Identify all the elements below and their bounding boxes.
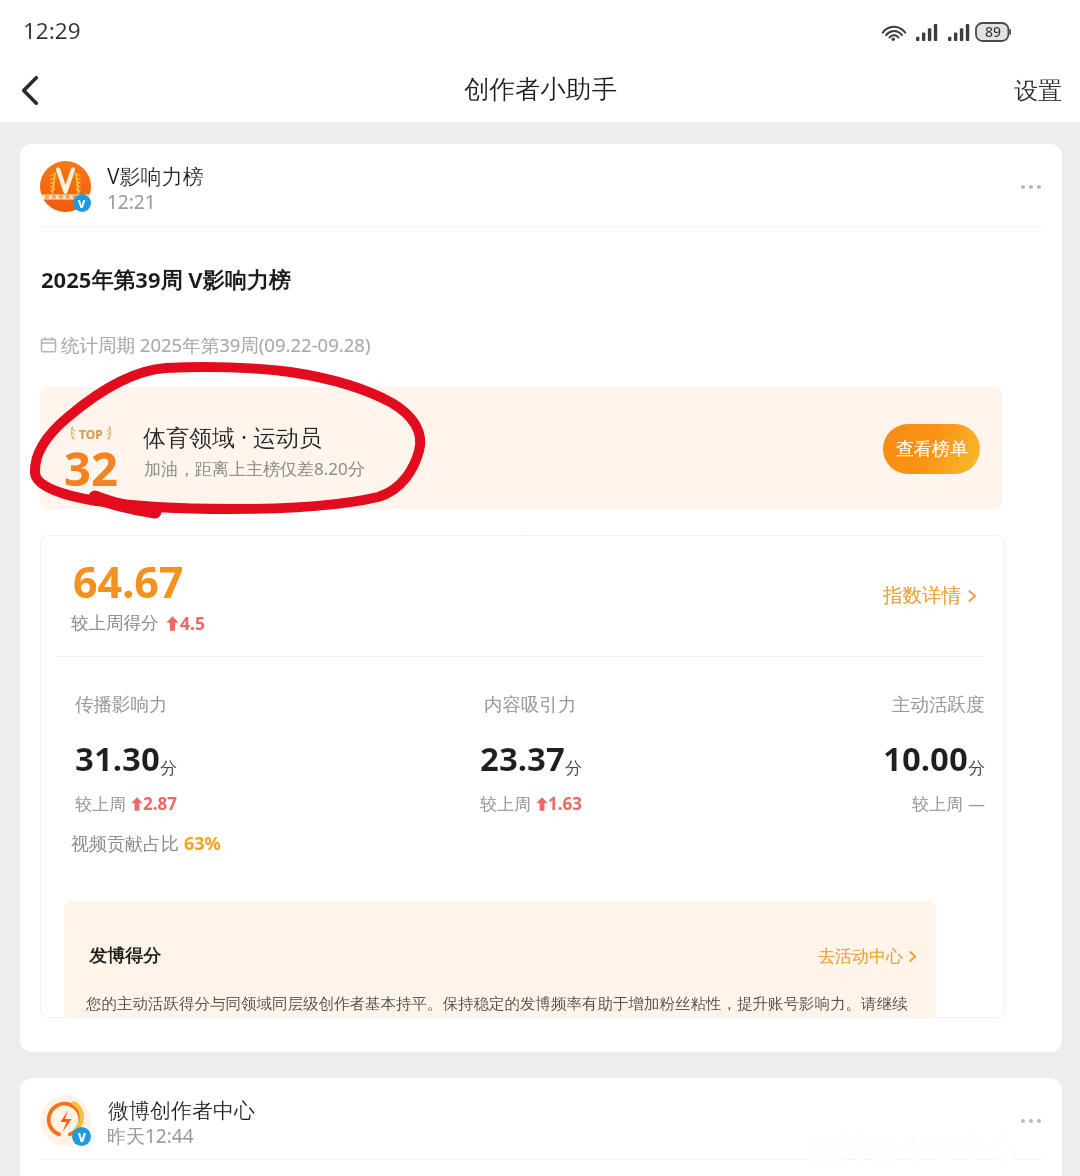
staticText: 指数详情 <box>883 583 961 608</box>
staticText: 23.37 <box>480 736 565 781</box>
button[interactable]: 指数详情 <box>877 579 985 612</box>
button[interactable]: Back <box>0 62 63 118</box>
staticText: 89 <box>985 22 1002 41</box>
staticText: 查看榜单 <box>896 438 968 461</box>
button[interactable]: TOP <box>40 387 1002 509</box>
staticText: 去活动中心 <box>818 946 903 967</box>
staticText: TOP <box>79 426 103 440</box>
button[interactable]: 发博得分 <box>64 901 936 1018</box>
staticText: 64.67 <box>73 552 184 611</box>
staticText: 分 <box>160 758 177 779</box>
staticText: 体育领域 · 运动员 <box>143 421 323 452</box>
button[interactable]: V <box>20 1078 1062 1176</box>
button[interactable]: 查看榜单 <box>883 424 980 474</box>
staticText: V影响力榜 <box>107 162 204 191</box>
staticText: 视频贡献占比 <box>71 831 184 856</box>
button[interactable]: More options <box>1015 1113 1047 1129</box>
staticText: 设置 <box>1014 76 1062 106</box>
staticText: 统计周期 2025年第39周(09.22-09.28) <box>61 332 371 357</box>
staticText: 较上周 <box>480 792 536 815</box>
staticText: 您的主动活跃得分与同领域同层级创作者基本持平。保持稳定的发博频率有助于增加粉丝粘… <box>86 994 936 1014</box>
staticText: 32 <box>64 436 118 500</box>
staticText: 较上周得分 <box>71 612 159 634</box>
staticText: 12:21 <box>107 189 156 215</box>
staticText: 分 <box>565 758 582 779</box>
staticText: V <box>78 1129 86 1145</box>
staticText: 主动活跃度 <box>892 693 985 716</box>
staticText: V <box>78 196 86 211</box>
button[interactable]: More options <box>1015 179 1047 195</box>
staticText: 2.87 <box>143 792 177 815</box>
staticText: 加油，距离上主榜仅差8.20分 <box>144 457 365 480</box>
staticText: 创作者小助手 <box>464 73 617 105</box>
staticText: 内容吸引力 <box>484 693 577 716</box>
staticText: 10.00 <box>883 736 968 781</box>
staticText: 微博创作者中心 <box>108 1098 255 1124</box>
staticText: 发博得分 <box>89 945 161 968</box>
staticText: 分 <box>968 758 985 779</box>
staticText: 2025年第39周 V影响力榜 <box>41 264 291 294</box>
staticText: 63% <box>184 831 221 856</box>
staticText: — <box>968 792 985 815</box>
button[interactable]: V <box>20 144 1062 226</box>
staticText: 传播影响力 <box>75 693 168 716</box>
staticText: 昨天12:44 <box>107 1123 194 1149</box>
staticText: 1.63 <box>548 792 582 815</box>
staticText: 12:29 <box>23 15 81 46</box>
staticText: 较上周 <box>912 792 968 815</box>
staticText: 31.30 <box>75 736 160 781</box>
staticText: 较上周 <box>75 792 131 815</box>
staticText: 4.5 <box>180 611 205 635</box>
button[interactable]: 设置 <box>995 63 1080 119</box>
